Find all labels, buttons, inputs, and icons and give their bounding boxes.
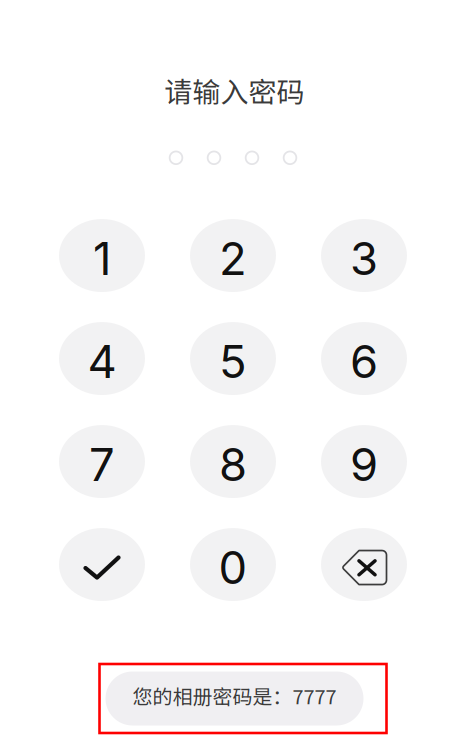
button[interactable]: 6 [321,322,407,395]
staticText: 8 [219,437,247,492]
button[interactable]: 0 [190,528,276,601]
staticText: 6 [350,334,378,389]
button[interactable]: 5 [190,322,276,395]
button[interactable]: Delete [321,528,407,601]
button[interactable]: 4 [59,322,145,395]
button[interactable]: 1 [59,219,145,292]
staticText: 1 [93,231,111,286]
staticText: 请输入密码 [164,70,304,110]
button[interactable]: 8 [190,425,276,498]
staticText: 您的相册密码是：7777 [132,681,336,710]
staticText: 2 [219,231,247,286]
button[interactable]: 9 [321,425,407,498]
button[interactable]: Confirm [59,528,145,601]
button[interactable]: 您的相册密码是：7777 [105,671,363,725]
staticText: 0 [218,540,247,595]
staticText: 3 [350,231,378,286]
staticText: 9 [350,437,378,492]
button[interactable]: 3 [321,219,407,292]
button[interactable]: 7 [59,425,145,498]
staticText: 4 [87,334,116,389]
staticText: 5 [219,334,247,389]
staticText: 7 [89,437,115,492]
button[interactable]: 2 [190,219,276,292]
